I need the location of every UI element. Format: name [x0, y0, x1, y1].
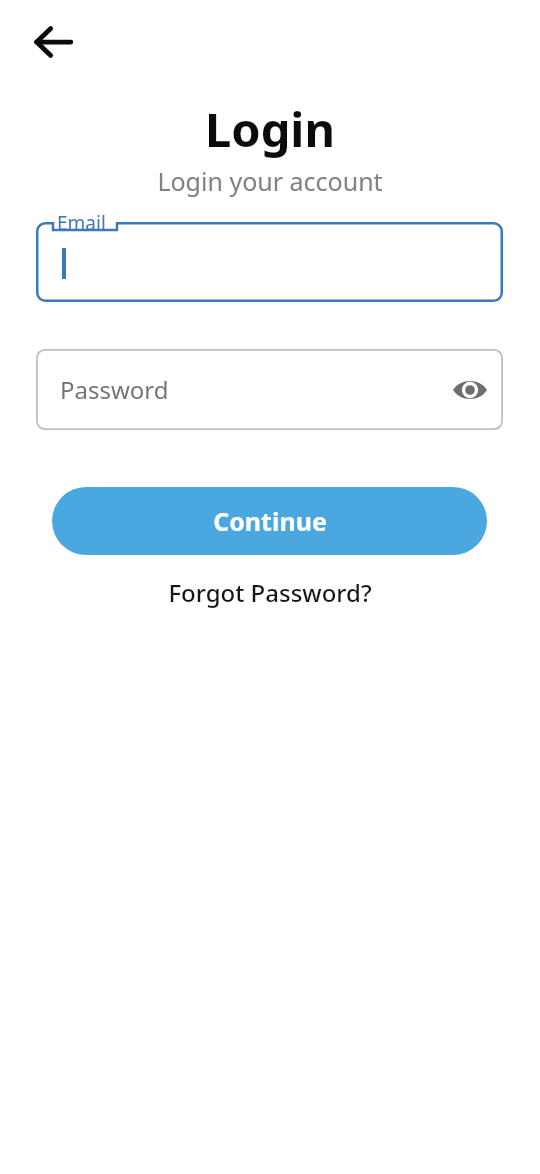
staticText: Login [205, 97, 335, 161]
staticText: Email [57, 210, 106, 236]
staticText: Login your account [157, 164, 383, 198]
staticText: Forgot Password? [168, 576, 372, 609]
button[interactable]: Back [19, 9, 87, 75]
button[interactable]: Continue [52, 487, 487, 555]
button[interactable] [36, 222, 503, 302]
staticText: Password [60, 373, 169, 406]
button[interactable]: Show password [436, 349, 503, 430]
staticText: Continue [213, 504, 327, 538]
button[interactable]: Password [36, 349, 503, 430]
button[interactable]: Forgot Password? [168, 576, 372, 609]
